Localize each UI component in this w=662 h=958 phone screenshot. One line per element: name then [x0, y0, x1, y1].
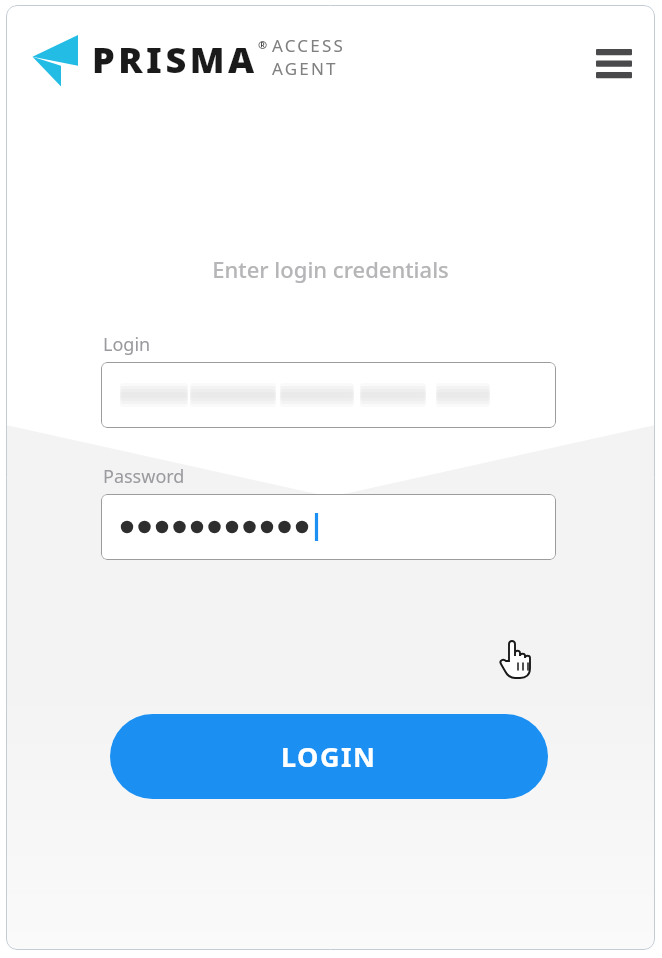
staticText: Login [103, 332, 151, 357]
staticText: LOGIN [281, 738, 377, 775]
button[interactable] [101, 494, 556, 560]
staticText: Enter login credentials [212, 254, 449, 284]
staticText: Password [103, 464, 185, 489]
staticText: PRISMA [92, 35, 258, 84]
staticText: AGENT [272, 57, 338, 80]
button[interactable]: LOGIN [110, 714, 548, 799]
staticText: ® [258, 37, 268, 52]
button[interactable]: Menu [592, 43, 636, 85]
staticText: ACCESS [272, 34, 345, 57]
button[interactable] [101, 362, 556, 428]
